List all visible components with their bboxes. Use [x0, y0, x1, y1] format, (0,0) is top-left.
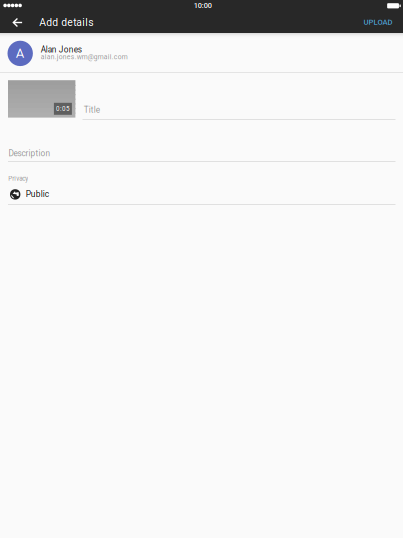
- staticText: alan.jones.wm@gmail.com: [41, 53, 128, 61]
- staticText: Description: [8, 148, 50, 158]
- staticText: Add details: [39, 16, 93, 28]
- staticText: Public: [26, 189, 49, 199]
- button[interactable]: UPLOAD: [352, 10, 403, 34]
- button[interactable]: Back: [0, 10, 34, 34]
- staticText: 10:00: [194, 1, 212, 10]
- staticText: A: [16, 46, 25, 61]
- button[interactable]: A: [0, 33, 403, 72]
- staticText: UPLOAD: [363, 17, 392, 27]
- staticText: Privacy: [8, 175, 28, 182]
- button[interactable]: Public: [0, 184, 403, 202]
- staticText: 0:05: [56, 105, 70, 112]
- staticText: Title: [84, 105, 100, 115]
- staticText: Alan Jones: [41, 45, 82, 55]
